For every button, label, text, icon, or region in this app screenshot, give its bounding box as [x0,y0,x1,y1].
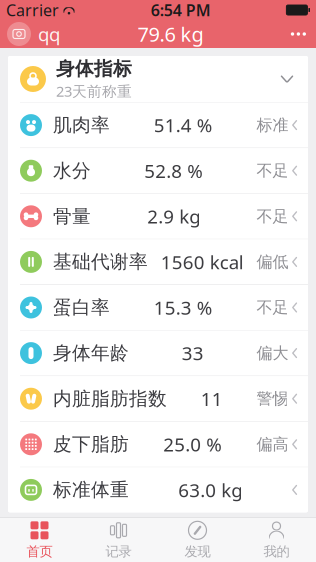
button[interactable]: 基础代谢率 [8,239,308,285]
staticText: 6:54 PM [151,0,211,21]
button[interactable]: Profile qq [0,22,60,46]
staticText: 水分 [53,159,91,182]
staticText: 15.3 % [154,295,213,320]
staticText: 蛋白率 [53,296,110,319]
staticText: 标准 [256,115,288,135]
staticText: qq [38,22,60,46]
staticText: 不足 [256,206,288,226]
staticText: 发现 [184,543,210,560]
staticText: 偏高 [256,434,288,454]
staticText: 首页 [26,543,52,560]
staticText: Carrier [6,0,59,21]
staticText: 11 [201,386,223,411]
staticText: 标准体重 [53,478,129,501]
staticText: 记录 [105,543,131,560]
staticText: 偏大 [256,343,288,363]
staticText: 偏低 [256,252,288,272]
staticText: 警惕 [256,389,288,409]
button[interactable]: 记录 [79,518,158,562]
staticText: 我的 [263,543,289,560]
staticText: 皮下脂肪 [53,433,129,456]
button[interactable]: 身体指标 [8,56,308,103]
staticText: 不足 [256,298,288,317]
staticText: 体重趋势 [56,534,132,557]
staticText: 33 [182,341,204,365]
staticText: 25.0 % [163,432,222,457]
staticText: 23天前称重 [56,81,132,101]
staticText: 肌肉率 [53,114,110,136]
button[interactable]: 骨量 [8,194,308,239]
button[interactable]: 我的 [237,518,316,562]
button[interactable]: More options [281,18,316,50]
button[interactable]: 首页 [0,518,79,562]
staticText: 63.0 kg [178,477,242,502]
staticText: 基础代谢率 [53,250,148,273]
staticText: 内脏脂肪指数 [53,387,167,410]
staticText: 身体年龄 [53,342,129,364]
button[interactable]: 身体年龄 [8,331,308,376]
staticText: 骨量 [53,205,91,228]
button[interactable]: 发现 [158,518,237,562]
staticText: 身体指标 [56,57,132,80]
staticText: 2.9 kg [147,204,200,229]
staticText: 52.8 % [144,158,203,183]
staticText: 1560 kcal [161,249,244,274]
staticText: 51.4 % [154,113,213,137]
button[interactable]: 肌肉率 [8,103,308,148]
button[interactable]: 水分 [8,148,308,194]
button[interactable]: 标准体重 [8,467,308,512]
button[interactable]: 内脏脂肪指数 [8,376,308,422]
button[interactable]: 皮下脂肪 [8,422,308,467]
staticText: 79.6 kg [137,21,203,47]
staticText: 不足 [256,161,288,181]
button[interactable]: 蛋白率 [8,285,308,331]
